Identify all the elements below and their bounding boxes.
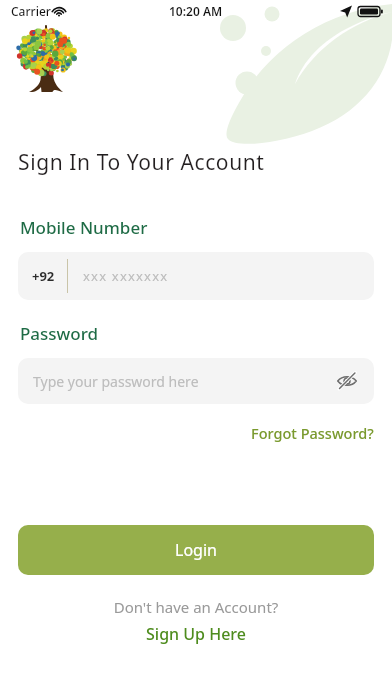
staticText: xxx xxxxxxx (83, 267, 169, 285)
staticText: Type your password here (33, 372, 334, 391)
button[interactable]: Show password (334, 368, 360, 394)
staticText: Carrier (11, 3, 51, 19)
button[interactable]: Login (18, 525, 374, 575)
staticText: Password (20, 322, 99, 345)
button[interactable]: Forgot Password? (251, 421, 392, 445)
button[interactable]: Type your password here (18, 358, 374, 404)
staticText: +92 (32, 267, 55, 285)
staticText: Don't have an Account? (0, 597, 392, 617)
staticText: Sign In To Your Account (18, 148, 265, 177)
staticText: 10:20 AM (169, 3, 223, 19)
button[interactable]: Sign Up Here (138, 621, 254, 647)
button[interactable]: +92 (18, 252, 374, 300)
staticText: Login (175, 539, 217, 561)
staticText: Mobile Number (20, 216, 148, 239)
